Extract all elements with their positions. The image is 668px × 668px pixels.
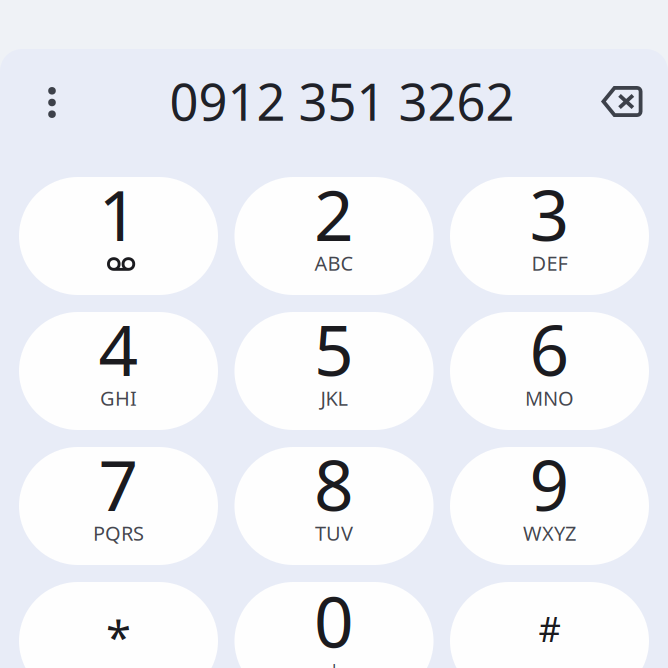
staticText: 4 [98, 303, 138, 395]
staticText: PQRS [93, 520, 144, 546]
staticText: DEF [531, 250, 567, 276]
button[interactable]: # [450, 582, 649, 668]
staticText: GHI [100, 385, 137, 411]
staticText: * [106, 607, 131, 667]
staticText: # [538, 605, 560, 651]
button[interactable]: 8 [234, 447, 433, 565]
staticText: 9 [529, 438, 569, 530]
staticText: 7 [98, 438, 138, 530]
button[interactable]: Delete [594, 73, 650, 129]
button[interactable]: 0 [234, 582, 433, 668]
button[interactable]: 6 [450, 312, 649, 430]
staticText: WXYZ [523, 520, 576, 546]
button[interactable]: 2 [234, 177, 433, 295]
staticText: ABC [314, 250, 353, 276]
staticText: 5 [314, 303, 354, 395]
staticText: JKL [320, 385, 347, 411]
staticText: 6 [529, 303, 569, 395]
staticText: 0912 351 3262 [169, 67, 514, 135]
button[interactable]: 1 [19, 177, 218, 295]
staticText: 3 [529, 168, 569, 260]
staticText: + [328, 655, 339, 668]
button[interactable]: 5 [234, 312, 433, 430]
staticText: 0 [314, 575, 354, 667]
button[interactable]: More options [24, 74, 80, 130]
staticText: MNO [525, 385, 574, 411]
button[interactable]: 9 [450, 447, 649, 565]
staticText: 1 [98, 168, 138, 260]
button[interactable]: 3 [450, 177, 649, 295]
button[interactable]: 4 [19, 312, 218, 430]
button[interactable]: * [19, 582, 218, 668]
staticText: 2 [314, 168, 354, 260]
button[interactable]: 7 [19, 447, 218, 565]
staticText: TUV [315, 520, 353, 546]
staticText: 8 [314, 438, 354, 530]
